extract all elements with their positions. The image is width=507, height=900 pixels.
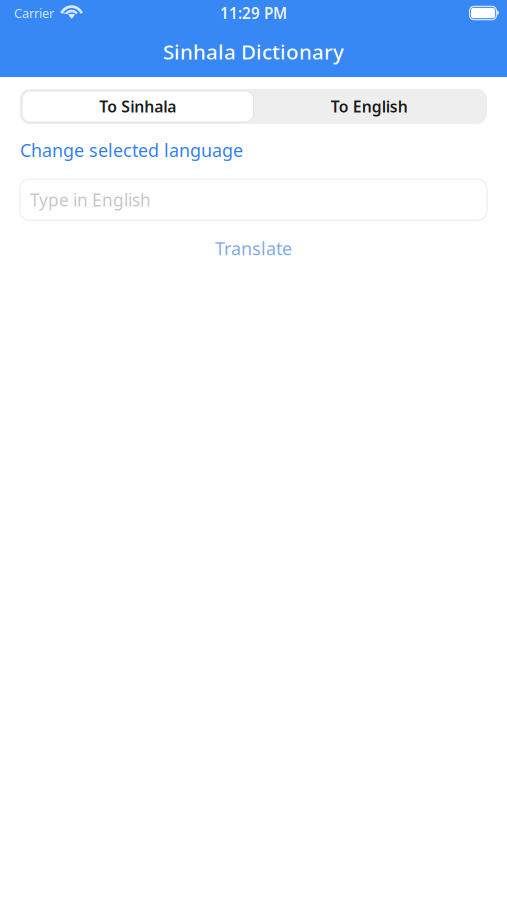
button[interactable]: To English: [253, 91, 485, 122]
staticText: 11:29 PM: [220, 3, 287, 23]
staticText: Sinhala Dictionary: [163, 37, 344, 65]
staticText: To English: [331, 96, 408, 117]
staticText: Carrier: [14, 4, 54, 22]
button[interactable]: Change selected language: [20, 138, 243, 162]
button[interactable]: To Sinhala: [22, 91, 253, 122]
staticText: Change selected language: [20, 138, 243, 162]
staticText: To Sinhala: [99, 96, 176, 117]
button[interactable]: Type in English: [20, 179, 487, 220]
staticText: Type in English: [30, 188, 151, 211]
button[interactable]: Translate: [20, 233, 487, 263]
staticText: Translate: [215, 236, 292, 260]
